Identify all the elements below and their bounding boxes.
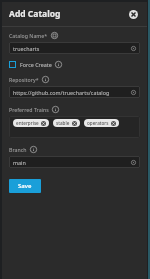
button[interactable]: Close [126, 7, 140, 21]
staticText: main [13, 159, 131, 166]
button[interactable]: Help for Preferred Trains [52, 106, 59, 113]
button[interactable]: https://github.com/truecharts/catalog [9, 86, 140, 98]
button[interactable]: truecharts [9, 42, 140, 54]
staticText: Catalog Name* [9, 32, 48, 39]
button[interactable]: enterprise [13, 119, 49, 127]
button[interactable]: Force Create [9, 61, 62, 68]
staticText: Preferred Trains [9, 106, 49, 113]
button[interactable]: stable [53, 119, 80, 127]
staticText: https://github.com/truecharts/catalog [13, 89, 131, 96]
button[interactable]: Help for Repository [42, 76, 49, 83]
staticText: Save [18, 182, 32, 190]
staticText: stable [56, 120, 70, 126]
button[interactable]: Help for Catalog Name [51, 32, 58, 39]
button[interactable]: main [9, 156, 140, 168]
button[interactable]: operators [84, 119, 119, 127]
button[interactable]: Save [9, 179, 41, 193]
staticText: operators [87, 120, 109, 126]
staticText: enterprise [16, 120, 39, 126]
staticText: Add Catalog [9, 8, 61, 20]
staticText: Branch [9, 146, 27, 153]
button[interactable]: Help for Branch [30, 146, 37, 153]
staticText: Force Create [20, 61, 52, 68]
staticText: truecharts [13, 45, 131, 52]
staticText: Repository* [9, 76, 39, 83]
